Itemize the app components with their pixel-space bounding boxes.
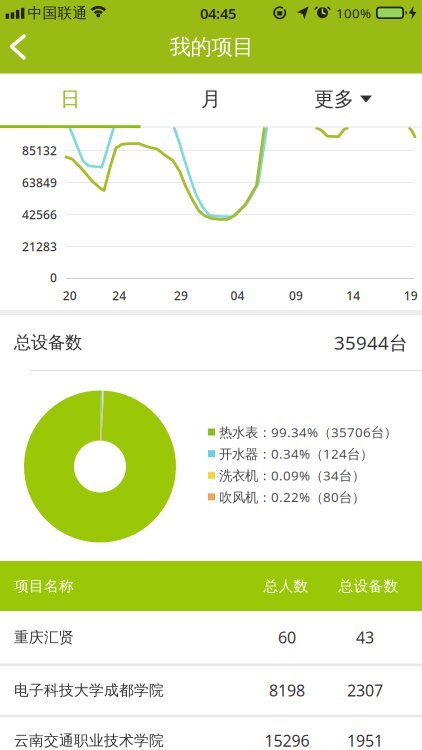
button[interactable]: 云南交通职业技术学院 [0,717,422,750]
staticText: 重庆汇贤 [14,628,74,646]
staticText: 20 [63,287,77,303]
staticText: 85132 [22,142,57,158]
button[interactable]: 月 [141,72,281,125]
staticText: 吹风机：0.22%（80台） [219,488,365,506]
button[interactable]: 日 [0,72,141,125]
staticText: 电子科技大学成都学院 [14,681,164,699]
staticText: 洗衣机：0.09%（34台） [219,466,365,484]
staticText: 29 [174,287,188,303]
staticText: 0 [50,269,57,285]
staticText: 14 [346,287,360,303]
button[interactable]: 重庆汇贤 [0,611,422,663]
staticText: 2307 [347,680,383,701]
staticText: 云南交通职业技术学院 [14,731,164,749]
staticText: 热水表：99.34%（35706台） [219,423,397,441]
button[interactable]: 电子科技大学成都学院 [0,666,422,714]
staticText: 43 [356,627,374,648]
button[interactable]: Back [0,0,44,44]
staticText: 月 [201,87,221,111]
staticText: 19 [404,287,418,303]
staticText: 24 [112,287,126,303]
staticText: 开水器：0.34%（124台） [219,445,373,462]
staticText: 总人数 [263,577,308,595]
staticText: 总设备数 [14,332,82,353]
staticText: 100% [336,4,371,22]
staticText: 09 [289,287,303,303]
staticText: 8198 [269,680,305,701]
staticText: 更多 [314,87,354,111]
staticText: 35944台 [334,330,408,355]
staticText: 15296 [264,730,309,750]
staticText: 1951 [347,730,383,750]
staticText: 04:45 [200,3,236,23]
staticText: 项目名称 [14,577,74,595]
staticText: 60 [278,627,296,648]
staticText: 日 [60,87,80,111]
button[interactable]: 更多 [273,72,413,125]
staticText: 04 [231,287,245,303]
staticText: 我的项目 [169,34,253,60]
staticText: 中国联通 [27,4,87,22]
staticText: 总设备数 [338,577,398,595]
staticText: 21283 [22,238,57,254]
staticText: 42566 [22,206,57,222]
staticText: 63849 [22,174,57,190]
